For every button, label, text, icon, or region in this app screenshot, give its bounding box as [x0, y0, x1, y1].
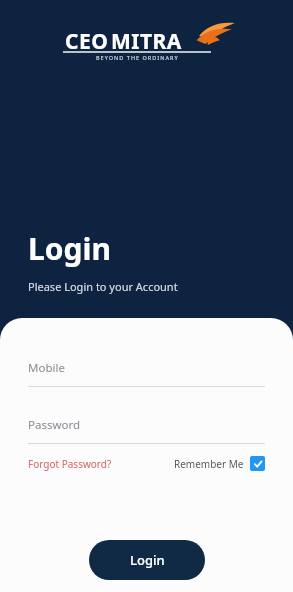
staticText: Login: [130, 551, 165, 569]
button[interactable]: Login: [89, 540, 205, 580]
staticText: Please Login to your Account: [28, 279, 178, 294]
staticText: BEYOND THE ORDINARY: [96, 54, 179, 61]
staticText: MITRA: [111, 27, 182, 56]
button[interactable]: Password: [28, 417, 265, 444]
staticText: Forgot Password?: [28, 457, 112, 471]
button[interactable]: Remember Me: [174, 454, 265, 473]
staticText: Mobile: [28, 360, 65, 376]
staticText: Remember Me: [174, 457, 244, 471]
staticText: CEO: [65, 27, 109, 56]
button[interactable]: Mobile: [28, 360, 265, 387]
staticText: Login: [28, 228, 111, 269]
staticText: Password: [28, 417, 81, 433]
button[interactable]: Forgot Password?: [28, 455, 112, 473]
